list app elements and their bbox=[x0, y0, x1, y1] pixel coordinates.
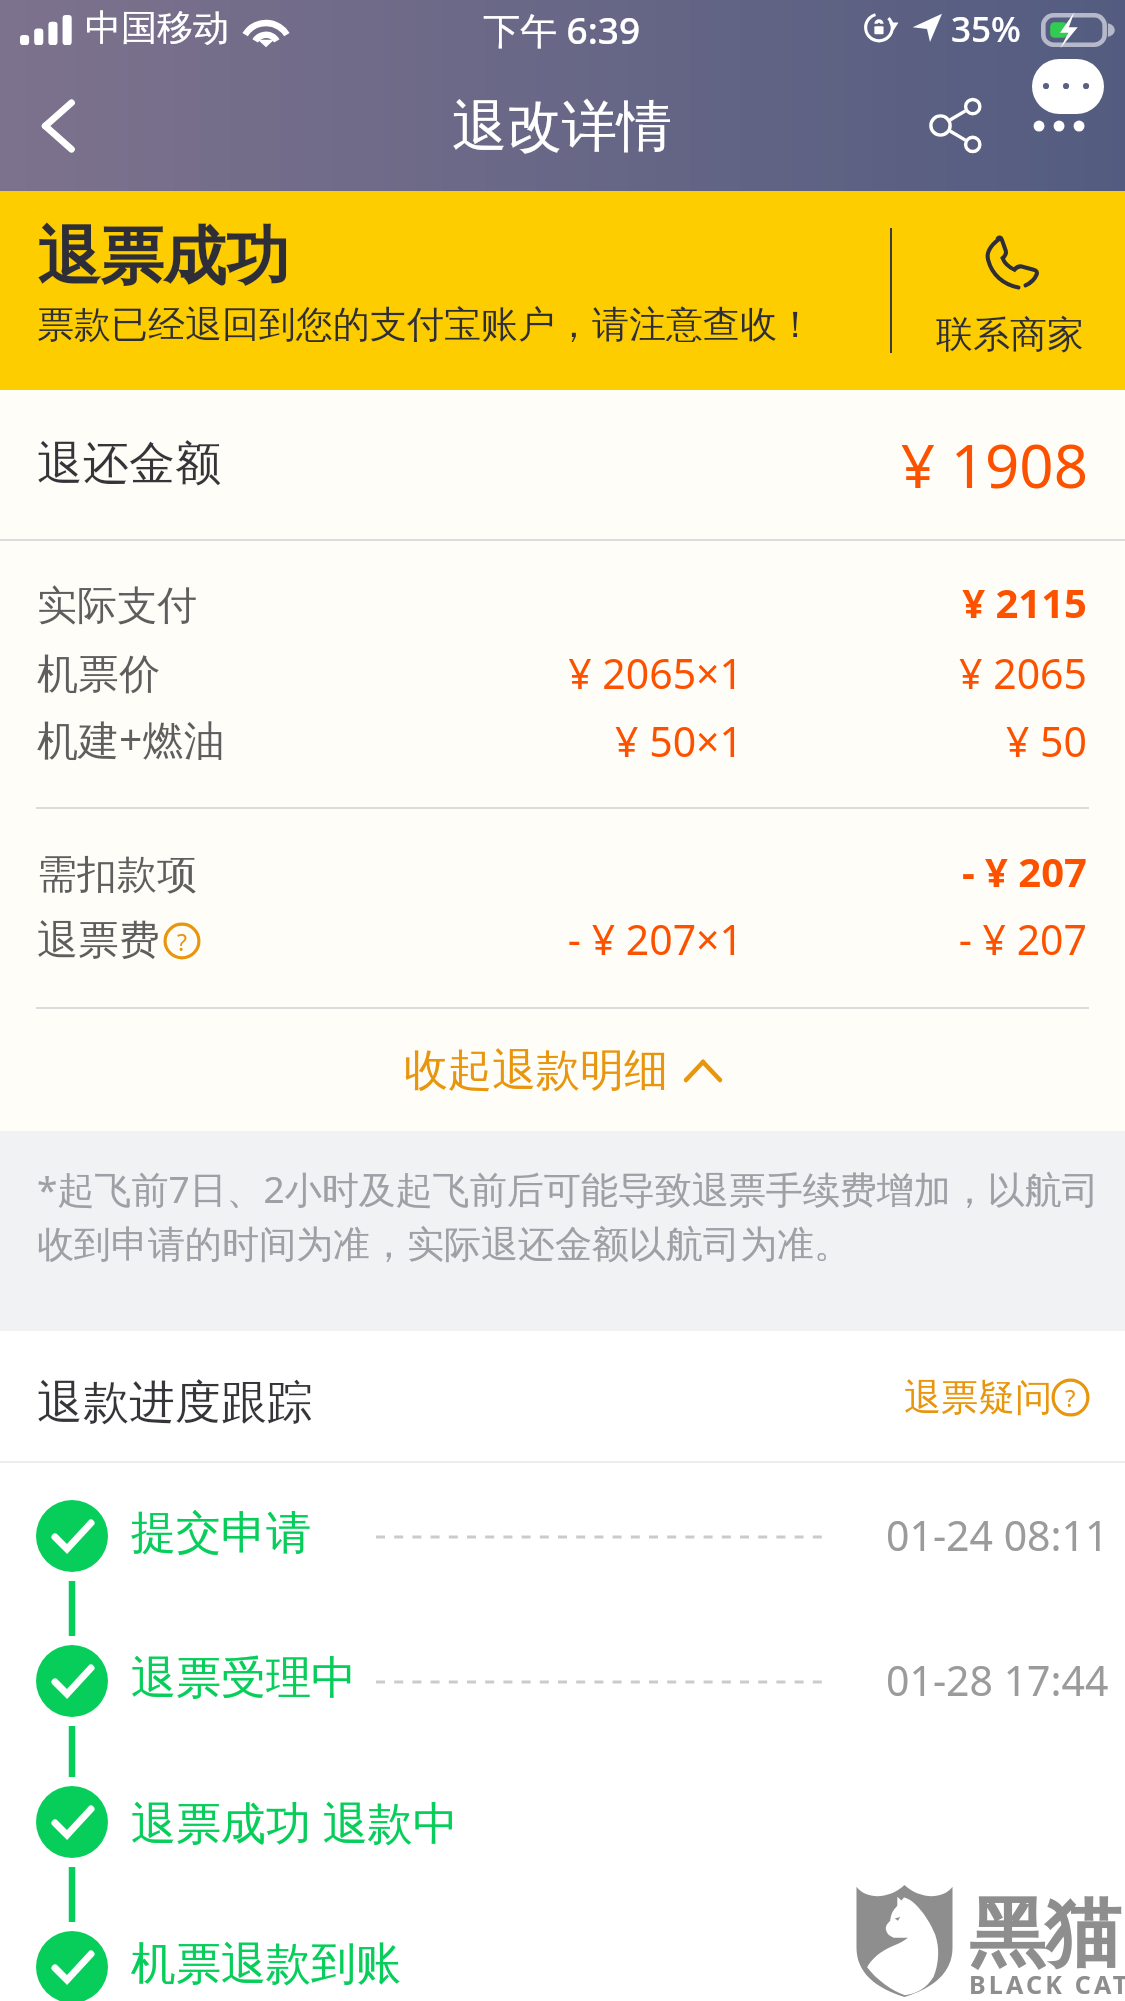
staticText: ¥ 2065 bbox=[740, 645, 1087, 701]
button[interactable]: 联系商家 bbox=[891, 191, 1125, 390]
staticText: 退票疑问 bbox=[904, 1374, 1052, 1421]
staticText: 黑猫 bbox=[969, 1886, 1121, 1982]
staticText: 联系商家 bbox=[936, 311, 1084, 358]
staticText: 退票成功 bbox=[37, 217, 289, 296]
staticText: *起飞前7日、2小时及起飞前后可能导致退票手续费增加，以航司收到申请的时间为准，… bbox=[37, 1163, 1099, 1268]
button[interactable]: 收起退款明细 bbox=[0, 1009, 1125, 1131]
staticText: ¥ 2115 bbox=[740, 575, 1087, 629]
button[interactable]: Back bbox=[16, 88, 92, 164]
staticText: 退还金额 bbox=[37, 435, 221, 493]
staticText: - ¥ 207 bbox=[740, 911, 1087, 967]
staticText: 退票费 bbox=[37, 915, 160, 967]
staticText: ¥ 1908 bbox=[660, 424, 1088, 506]
staticText: 机票价 bbox=[37, 649, 160, 701]
button[interactable]: More options bbox=[1020, 48, 1116, 142]
staticText: 需扣款项 bbox=[37, 849, 197, 899]
staticText: - ¥ 207×1 bbox=[343, 911, 743, 967]
staticText: 收起退款明细 bbox=[404, 1043, 668, 1098]
staticText: ? bbox=[1065, 1381, 1076, 1414]
staticText: 下午 6:39 bbox=[483, 4, 641, 55]
staticText: 退票成功 退款中 bbox=[131, 1791, 458, 1852]
staticText: 35% bbox=[951, 5, 1021, 53]
staticText: ? bbox=[177, 926, 187, 957]
staticText: 实际支付 bbox=[37, 580, 197, 630]
staticText: 01-24 08:11 bbox=[886, 1507, 1109, 1563]
staticText: BLACK CAT bbox=[969, 1967, 1125, 2001]
staticText: 01-28 17:44 bbox=[886, 1652, 1109, 1708]
staticText: 退款进度跟踪 bbox=[37, 1374, 313, 1432]
staticText: 提交申请 bbox=[131, 1505, 311, 1562]
staticText: 退改详情 bbox=[452, 92, 672, 161]
button[interactable]: Share bbox=[913, 82, 999, 168]
staticText: 中国移动 bbox=[85, 5, 229, 50]
staticText: 票款已经退回到您的支付宝账户，请注意查收！ bbox=[37, 301, 814, 348]
staticText: 机建+燃油 bbox=[37, 711, 225, 767]
staticText: ¥ 2065×1 bbox=[343, 645, 743, 701]
staticText: ¥ 50 bbox=[740, 713, 1087, 769]
button[interactable]: 退票疑问 bbox=[904, 1368, 1089, 1426]
staticText: 机票退款到账 bbox=[131, 1936, 401, 1993]
staticText: 退票受理中 bbox=[131, 1650, 356, 1707]
staticText: ¥ 50×1 bbox=[343, 713, 743, 769]
staticText: - ¥ 207 bbox=[740, 844, 1087, 898]
